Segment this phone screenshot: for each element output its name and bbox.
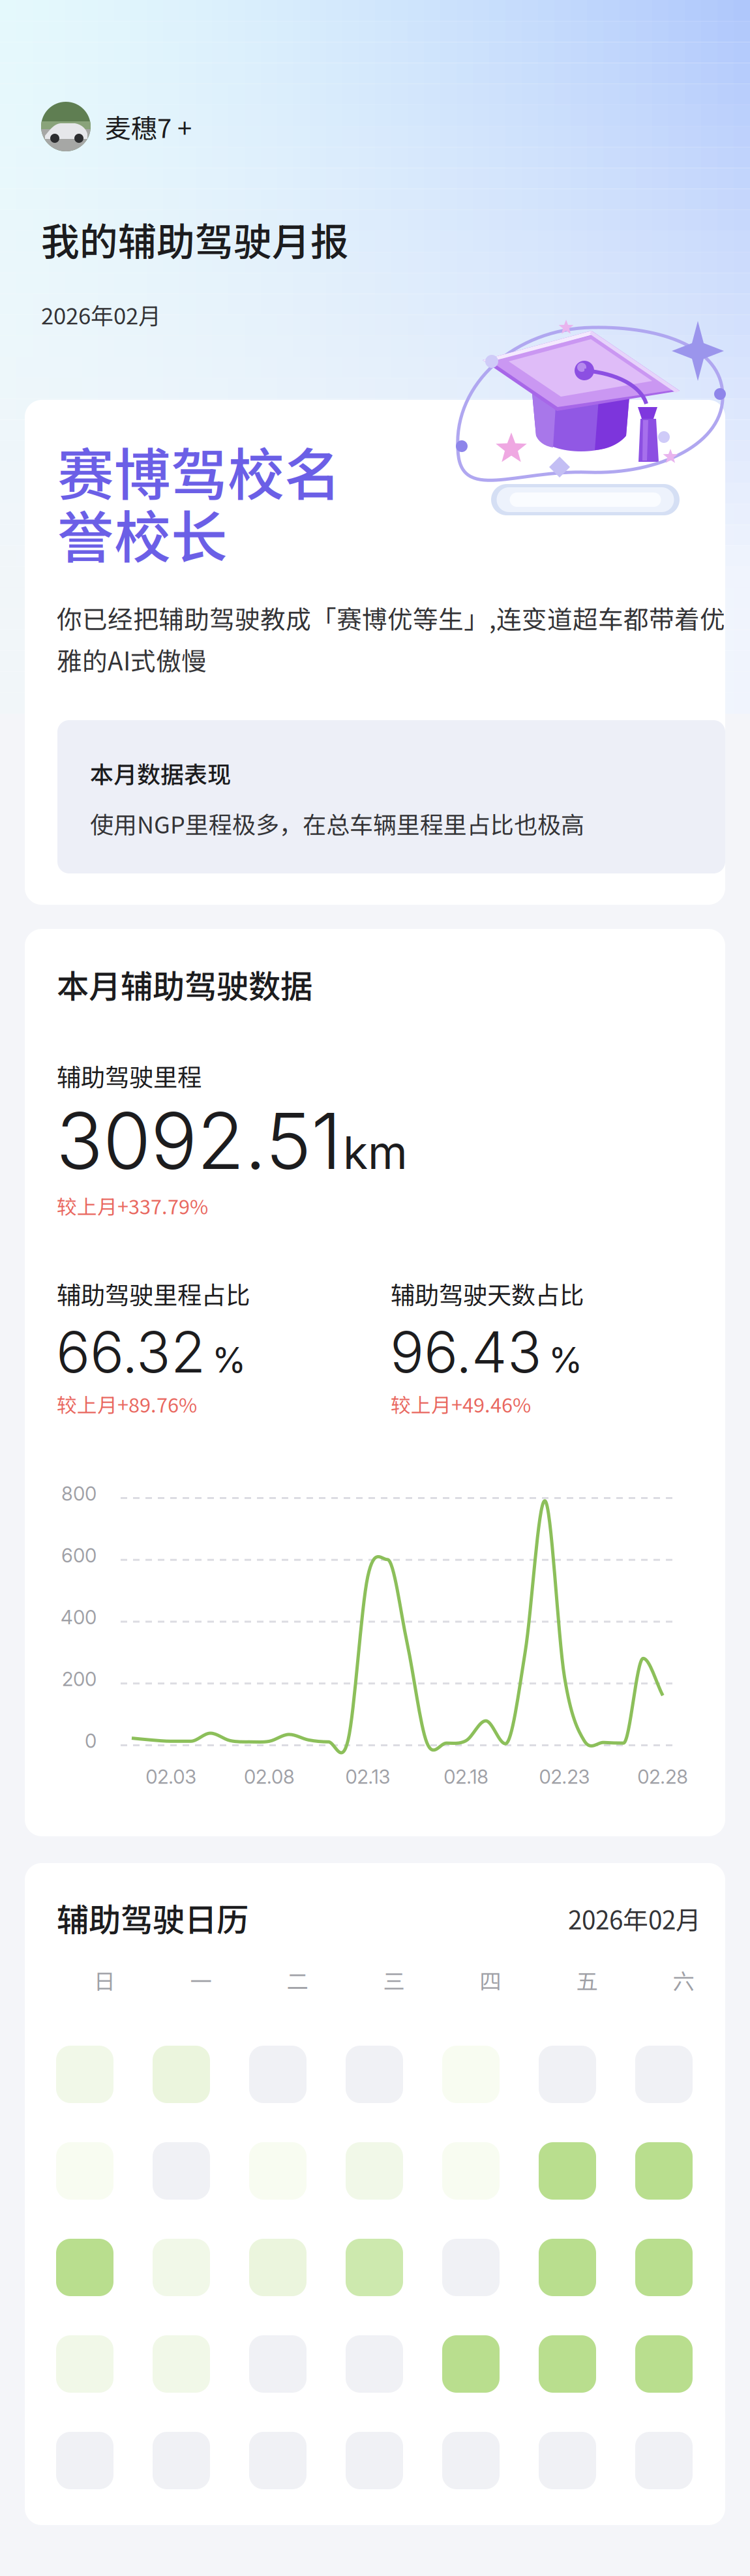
staticText: 本月辅助驾驶数据	[57, 961, 312, 1007]
staticText: 02.23	[539, 1765, 590, 1788]
staticText: 200	[62, 1667, 97, 1691]
staticText: 02.18	[444, 1765, 489, 1788]
staticText: 麦穗7 +	[105, 108, 192, 145]
staticText: 2026年02月	[41, 298, 161, 331]
staticText: 较上月+89.76%	[57, 1389, 197, 1418]
staticText: 辅助驾驶里程占比	[57, 1276, 250, 1311]
staticText: 辅助驾驶里程	[57, 1058, 202, 1093]
staticText: 我的辅助驾驶月报	[41, 211, 349, 267]
staticText: 2026年02月	[568, 1900, 701, 1937]
staticText: 三	[383, 1964, 405, 1996]
staticText: 3092.51	[56, 1094, 342, 1188]
staticText: 较上月+337.79%	[57, 1191, 208, 1220]
staticText: 你已经把辅助驾驶教成「赛博优等生」,连变道超车都带着优	[57, 599, 725, 636]
staticText: %	[548, 1339, 582, 1381]
staticText: 四	[480, 1964, 501, 1996]
staticText: 66.32	[56, 1318, 205, 1386]
staticText: 400	[61, 1606, 97, 1629]
staticText: 六	[673, 1964, 694, 1996]
staticText: 0	[85, 1729, 97, 1752]
staticText: 日	[94, 1964, 115, 1996]
staticText: km	[343, 1125, 408, 1180]
staticText: 96.43	[390, 1318, 542, 1386]
staticText: 辅助驾驶日历	[57, 1894, 248, 1941]
staticText: 赛博驾校名	[57, 430, 341, 512]
staticText: 辅助驾驶天数占比	[391, 1276, 584, 1311]
staticText: 800	[61, 1482, 97, 1505]
staticText: 五	[576, 1964, 598, 1996]
staticText: 02.03	[146, 1765, 196, 1788]
staticText: 02.13	[345, 1765, 390, 1788]
button[interactable]: 麦穗7 +	[41, 102, 192, 151]
staticText: 一	[190, 1964, 212, 1996]
staticText: 600	[61, 1544, 97, 1567]
staticText: 使用NGP里程极多，在总车辆里程里占比也极高	[90, 806, 584, 840]
staticText: 二	[287, 1964, 308, 1996]
staticText: 较上月+49.46%	[391, 1389, 531, 1418]
staticText: 誉校长	[57, 492, 228, 574]
staticText: 02.28	[637, 1765, 688, 1788]
staticText: %	[212, 1339, 246, 1381]
staticText: 本月数据表现	[90, 756, 231, 790]
staticText: 雅的AI式傲慢	[57, 641, 207, 678]
staticText: 02.08	[244, 1765, 295, 1788]
